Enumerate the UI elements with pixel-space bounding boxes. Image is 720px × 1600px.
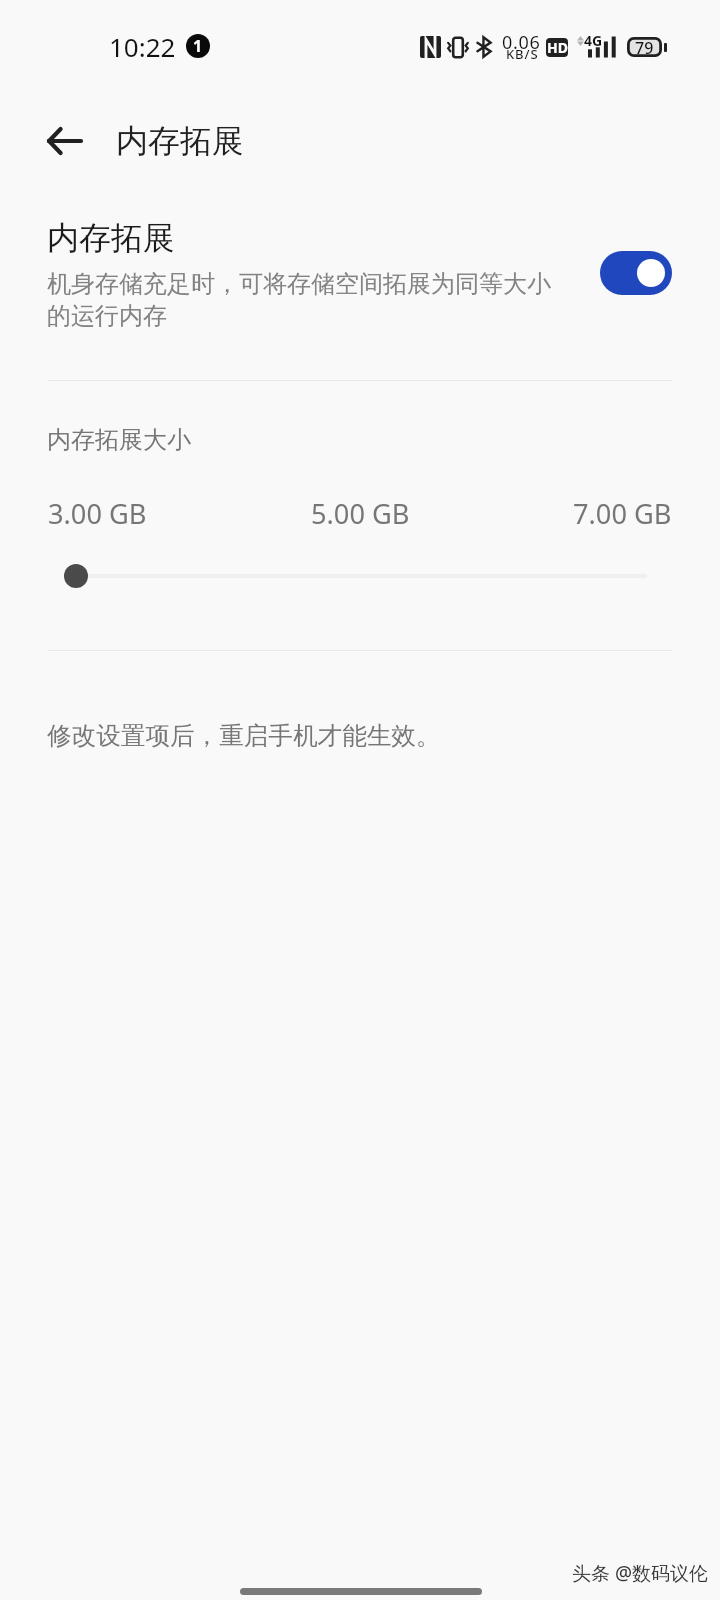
staticText: 0.06 [502,30,541,55]
staticText: 5.00 GB [311,495,410,532]
staticText: 7.00 GB [573,495,672,532]
staticText: HD [547,38,568,57]
button[interactable]: Memory extension size slider [48,556,672,596]
button[interactable]: Back [42,119,86,163]
staticText: 内存拓展大小 [47,425,191,455]
staticText: 10:22 [109,29,176,64]
staticText: 头条 @数码议伦 [572,1560,709,1586]
button[interactable]: Memory extension toggle [600,251,672,295]
staticText: 79 [635,37,654,57]
staticText: 内存拓展 [47,218,175,258]
staticText: 4G [584,31,603,50]
staticText: KB/S [506,45,539,63]
staticText: 修改设置项后，重启手机才能生效。 [47,720,441,751]
staticText: 3.00 GB [48,495,147,532]
staticText: 1 [193,35,203,57]
staticText: 机身存储充足时，可将存储空间拓展为同等大小的运行内存 [47,269,559,331]
staticText: 内存拓展 [116,121,244,161]
